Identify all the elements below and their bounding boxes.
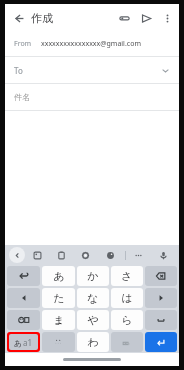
- button[interactable]: To: [14, 57, 170, 83]
- button[interactable]: Attach file: [113, 4, 135, 32]
- staticText: あ: [14, 338, 23, 348]
- staticText: は: [121, 291, 133, 305]
- button[interactable]: な: [77, 288, 109, 308]
- staticText: か: [87, 269, 99, 283]
- button[interactable]: Enter: [145, 332, 177, 352]
- button[interactable]: Emoji and symbols: [7, 310, 40, 330]
- button[interactable]: More: [126, 245, 151, 265]
- button[interactable]: Switch input mode: [9, 334, 38, 350]
- button[interactable]: Back: [5, 4, 31, 32]
- button[interactable]: From: [14, 32, 170, 56]
- staticText: xxxxxxxxxxxxxxxx@gmail.com: [41, 39, 141, 49]
- button[interactable]: あ: [42, 266, 75, 286]
- staticText: さ: [121, 269, 133, 283]
- button[interactable]: Stickers: [25, 245, 49, 265]
- staticText: な: [87, 291, 99, 305]
- button[interactable]: Send: [135, 4, 157, 32]
- staticText: あ: [53, 269, 65, 283]
- button[interactable]: Voice input: [151, 245, 176, 265]
- button[interactable]: わ: [77, 332, 109, 352]
- button[interactable]: ま: [42, 310, 75, 330]
- button[interactable]: Emoticons: [42, 332, 75, 352]
- staticText: ら: [121, 313, 133, 327]
- button[interactable]: Undo: [7, 266, 40, 286]
- button[interactable]: Space: [145, 310, 177, 330]
- staticText: 件名: [14, 92, 30, 102]
- staticText: To: [14, 65, 23, 76]
- staticText: た: [53, 291, 65, 305]
- button[interactable]: Punctuation: [111, 332, 143, 352]
- button[interactable]: Clipboard: [49, 245, 73, 265]
- button[interactable]: ら: [111, 310, 143, 330]
- staticText: 作成: [31, 11, 53, 25]
- button[interactable]: Delete: [145, 266, 177, 286]
- button[interactable]: か: [77, 266, 109, 286]
- button[interactable]: は: [111, 288, 143, 308]
- staticText: わ: [87, 335, 99, 349]
- button[interactable]: Collapse toolbar: [9, 247, 25, 263]
- staticText: a1: [23, 337, 33, 348]
- button[interactable]: Themes: [98, 245, 123, 265]
- staticText: From: [14, 39, 32, 49]
- button[interactable]: Settings: [73, 245, 98, 265]
- button[interactable]: Cursor left: [7, 288, 40, 308]
- button[interactable]: More options: [157, 4, 177, 32]
- button[interactable]: た: [42, 288, 75, 308]
- staticText: ま: [53, 313, 65, 327]
- button[interactable]: Cursor right: [145, 288, 177, 308]
- button[interactable]: さ: [111, 266, 143, 286]
- button[interactable]: 件名: [14, 84, 170, 110]
- staticText: や: [87, 313, 99, 327]
- button[interactable]: や: [77, 310, 109, 330]
